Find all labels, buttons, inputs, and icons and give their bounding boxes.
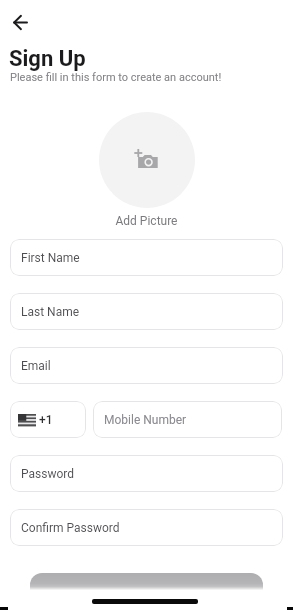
button[interactable]: Confirm Password [10,509,283,546]
staticText: Sign Up [9,46,86,72]
button[interactable]: Password [10,455,283,492]
staticText: Email [21,359,51,373]
staticText: Last Name [21,305,80,319]
button[interactable]: +1 [10,401,86,438]
staticText: Confirm Password [21,521,120,535]
staticText: First Name [21,251,80,265]
staticText: Add Picture [0,214,293,228]
staticText: Please fill in this form to create an ac… [10,71,222,84]
button[interactable] [7,9,34,36]
button[interactable] [30,573,263,590]
button[interactable]: First Name [10,239,283,276]
button[interactable]: Email [10,347,283,384]
staticText: Password [21,467,75,481]
button[interactable]: Last Name [10,293,283,330]
staticText: +1 [39,413,53,427]
button[interactable]: Mobile Number [93,401,282,438]
button[interactable] [99,112,195,208]
staticText: Mobile Number [104,413,187,427]
